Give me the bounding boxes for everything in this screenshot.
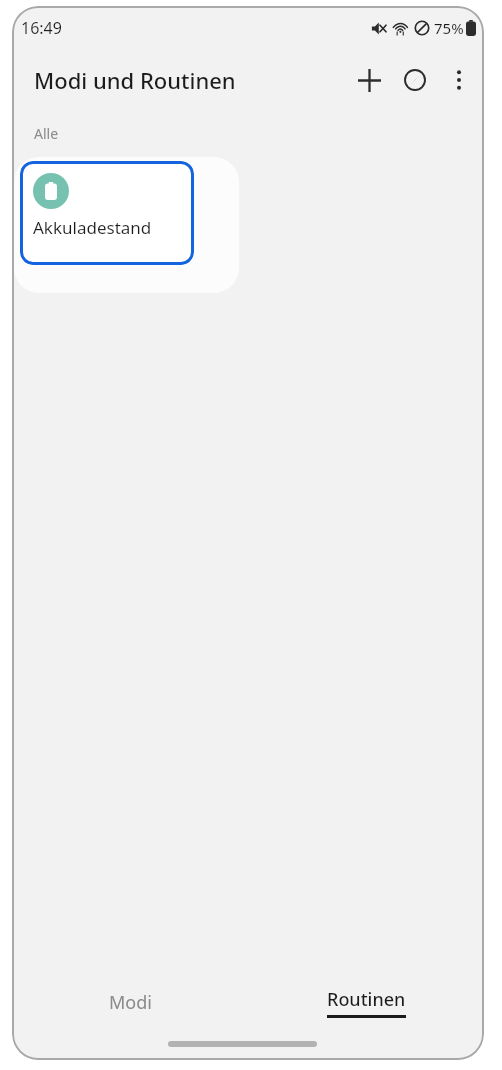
staticText: 75% [434,18,464,38]
staticText: Modi und Routinen [34,65,236,95]
button[interactable]: Hinzufügen [346,57,392,103]
button[interactable]: Routinen [248,976,484,1028]
staticText: Routinen [327,987,406,1012]
staticText: 16:49 [21,17,62,39]
staticText: Akkuladestand [33,216,152,239]
staticText: Modi [109,990,152,1015]
button[interactable]: Modi [12,976,248,1028]
button[interactable]: Entdecken [392,57,438,103]
button[interactable]: Weitere Optionen [438,59,480,101]
staticText: Alle [34,124,59,143]
button[interactable]: Akkuladestand [20,161,194,265]
